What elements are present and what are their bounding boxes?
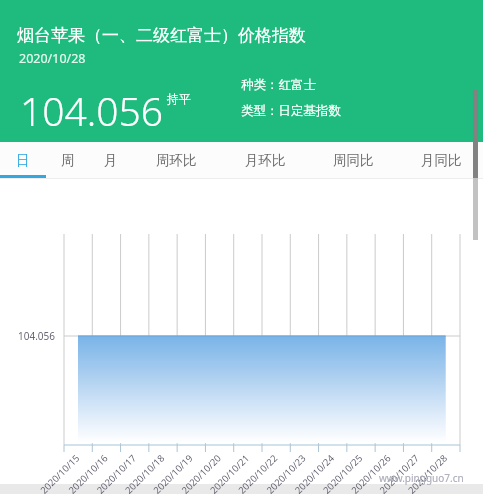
staticText: 烟台苹果（一、二级红富士）价格指数	[17, 25, 306, 46]
button[interactable]: 周同比	[316, 142, 390, 178]
button[interactable]: 周环比	[139, 142, 213, 178]
button[interactable]: 月环比	[228, 142, 302, 178]
button[interactable]: 月同比	[404, 142, 478, 178]
staticText: 月	[104, 152, 118, 169]
staticText: 月环比	[245, 152, 286, 169]
staticText: 持平	[167, 91, 191, 106]
staticText: 种类：红富士	[241, 77, 316, 93]
button[interactable]: 周	[46, 142, 90, 178]
staticText: 周同比	[333, 152, 374, 169]
staticText: 类型：日定基指数	[241, 103, 341, 119]
button[interactable]: 月	[89, 142, 133, 178]
button[interactable]: 日	[0, 142, 46, 178]
staticText: 周环比	[156, 152, 197, 169]
staticText: 104.056	[20, 84, 164, 137]
staticText: 2020/10/28	[19, 50, 86, 67]
staticText: 日	[16, 152, 30, 169]
staticText: 周	[61, 152, 75, 169]
staticText: 月同比	[421, 152, 462, 169]
